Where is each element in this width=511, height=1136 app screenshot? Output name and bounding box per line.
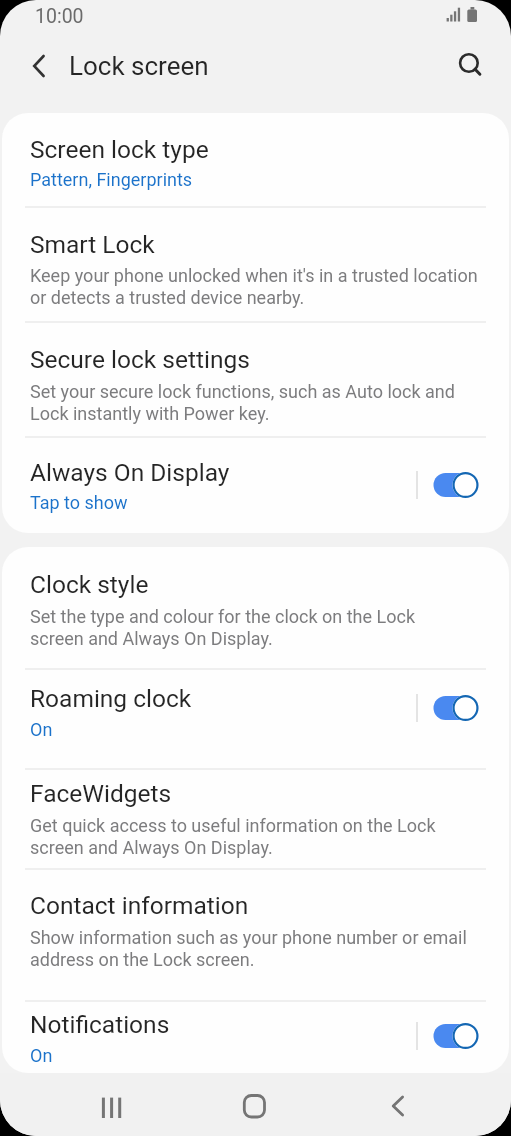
staticText: FaceWidgets: [30, 779, 172, 808]
button[interactable]: Clock style: [2, 547, 509, 668]
staticText: Always On Display: [30, 458, 230, 487]
staticText: Secure lock settings: [30, 345, 250, 374]
button[interactable]: Smart Lock: [2, 208, 509, 321]
staticText: 10:00: [35, 5, 84, 28]
staticText: Smart Lock: [30, 230, 155, 259]
button[interactable]: [0, 1073, 171, 1136]
button[interactable]: [449, 43, 489, 83]
staticText: Clock style: [30, 570, 149, 599]
button[interactable]: [24, 46, 64, 86]
staticText: Keep your phone unlocked when it's in a …: [30, 265, 478, 308]
staticText: Set your secure lock functions, such as …: [30, 381, 455, 424]
staticText: Roaming clock: [30, 684, 192, 713]
staticText: Screen lock type: [30, 135, 209, 164]
staticText: Contact information: [30, 891, 249, 920]
staticText: On: [30, 719, 53, 740]
button[interactable]: [171, 1073, 341, 1136]
button[interactable]: Notifications: [2, 1002, 509, 1073]
staticText: Set the type and colour for the clock on…: [30, 606, 416, 649]
button[interactable]: Secure lock settings: [2, 323, 509, 436]
staticText: Show information such as your phone numb…: [30, 927, 467, 970]
staticText: Tap to show: [30, 492, 128, 513]
button[interactable]: FaceWidgets: [2, 770, 509, 868]
staticText: On: [30, 1045, 53, 1066]
button[interactable]: [341, 1073, 511, 1136]
staticText: Pattern, Fingerprints: [30, 169, 193, 190]
button[interactable]: Screen lock type: [2, 113, 509, 206]
button[interactable]: Always On Display: [2, 438, 509, 533]
staticText: Lock screen: [69, 51, 209, 81]
button[interactable]: Roaming clock: [2, 670, 509, 768]
staticText: Get quick access to useful information o…: [30, 815, 436, 858]
staticText: Notifications: [30, 1010, 170, 1039]
button[interactable]: Contact information: [2, 870, 509, 1000]
